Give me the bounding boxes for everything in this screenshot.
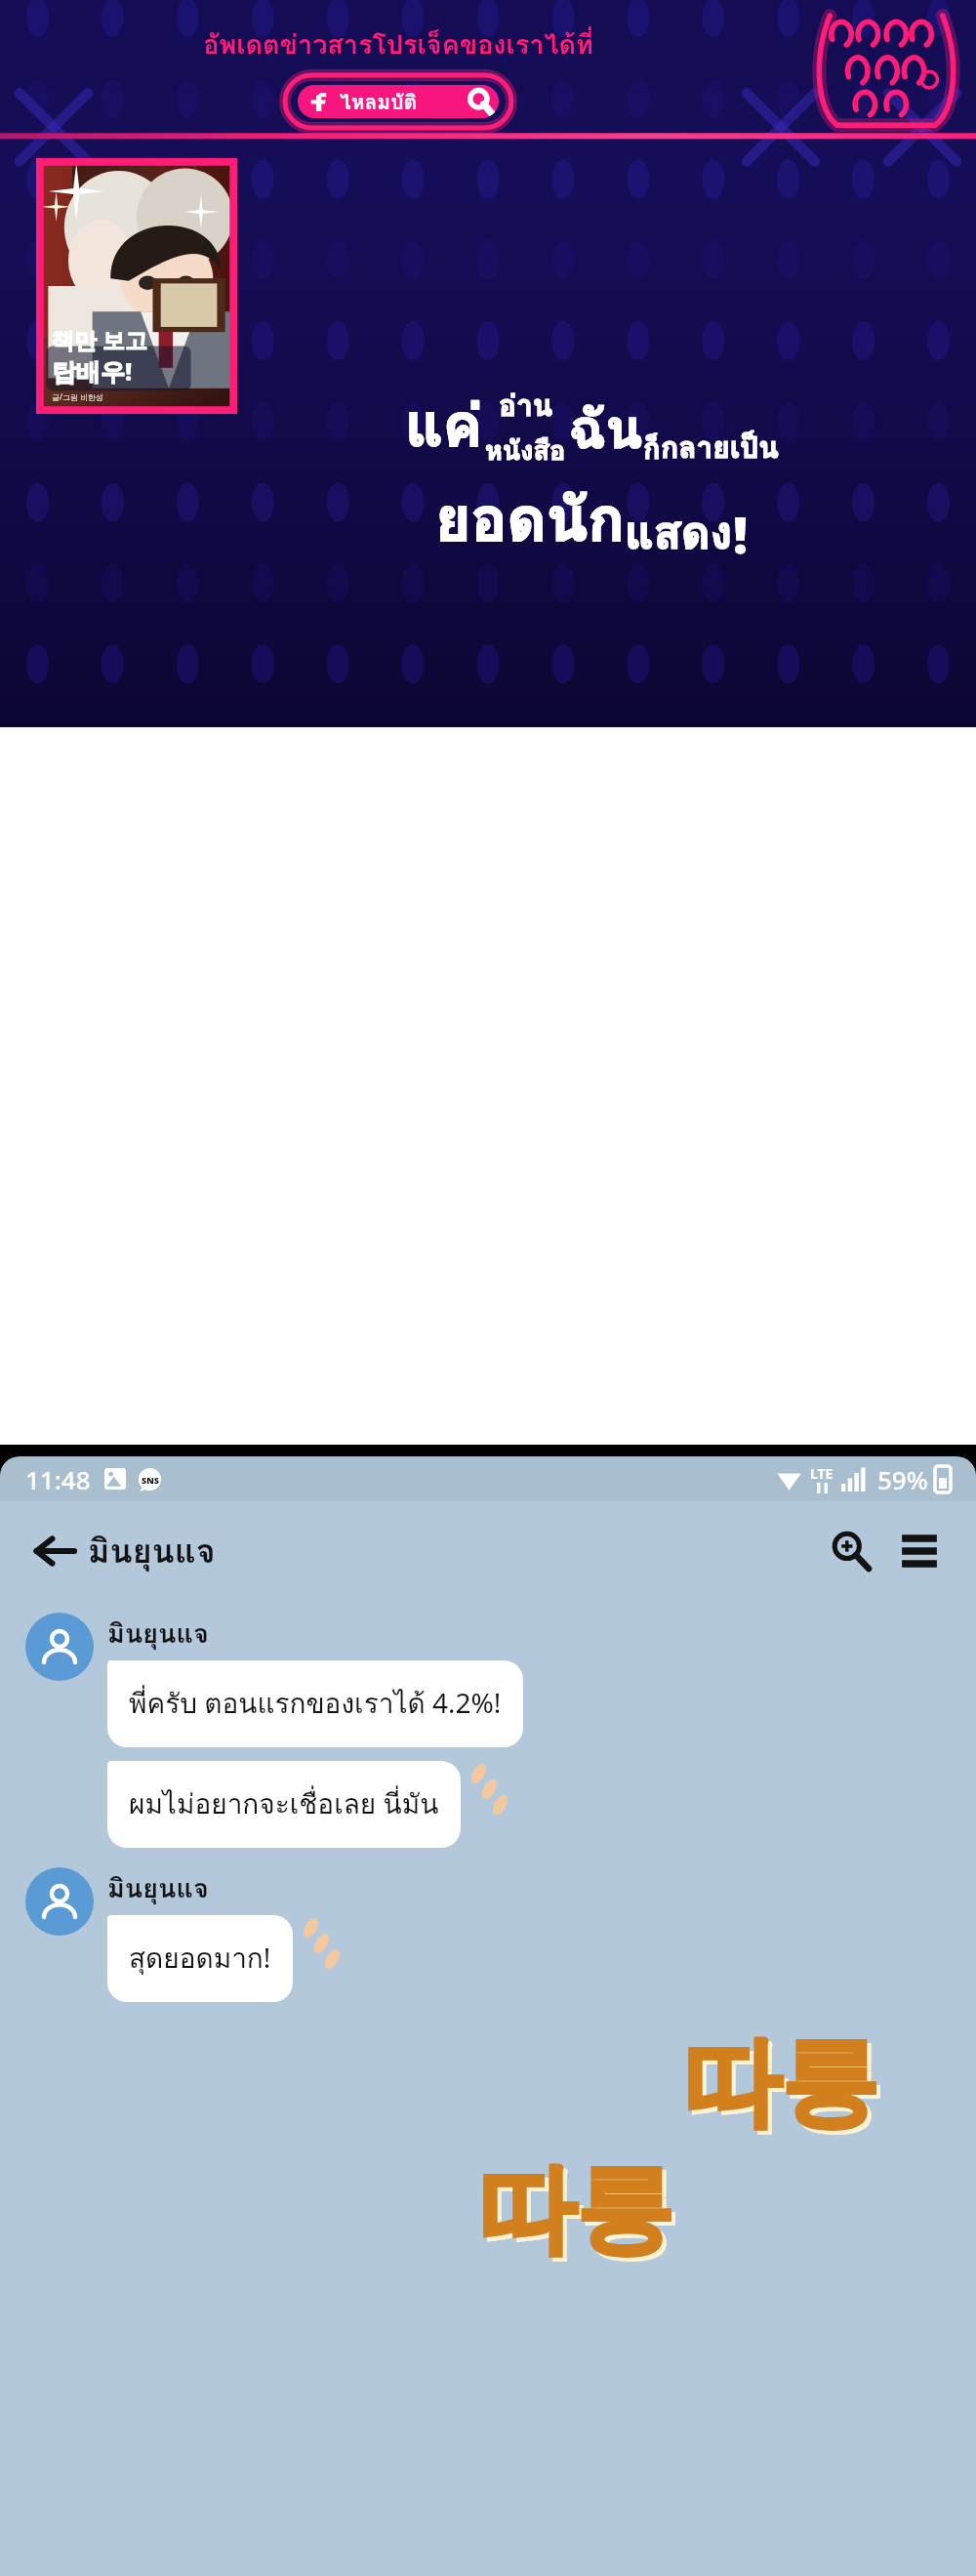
staticText: สุดยอดมาก! — [129, 1937, 271, 1981]
button[interactable]: สุดยอดมาก! — [107, 1915, 293, 2002]
staticText: มินยุนแจ — [107, 1867, 209, 1909]
staticText: ยอดนัก — [435, 471, 625, 568]
staticText: อัพเดตข่าวสารโปรเจ็คของเราได้ที่ — [203, 23, 593, 65]
staticText: ฉัน — [569, 387, 643, 471]
staticText: 탑배우! — [52, 354, 133, 388]
button[interactable]: Profile picture — [25, 1867, 94, 1936]
staticText: มินยุนแจ — [88, 1525, 216, 1577]
staticText: ก็ — [643, 427, 661, 471]
button[interactable]: 책만 보고 — [36, 158, 237, 414]
staticText: SNS — [142, 1474, 159, 1486]
staticText: 11:48 — [25, 1462, 91, 1496]
staticText: แค่ — [405, 379, 482, 471]
staticText: 따릉 — [478, 2148, 673, 2271]
staticText: 따릉 — [683, 2022, 878, 2145]
staticText: หนังสือ — [485, 429, 566, 471]
staticText: 따릉 — [482, 2152, 677, 2275]
staticText: 글/그림 비한성 — [52, 391, 104, 402]
staticText: ! — [733, 499, 749, 568]
staticText: มินยุนแจ — [107, 1613, 209, 1655]
staticText: กลาย — [661, 425, 730, 471]
staticText: แสดง — [625, 497, 733, 568]
staticText: LTE — [810, 1464, 834, 1483]
button[interactable]: Brand logo — [812, 6, 960, 129]
staticText: ! — [733, 499, 749, 568]
button[interactable]: Menu — [890, 1522, 949, 1580]
staticText: 책만 보고 — [52, 324, 147, 354]
button[interactable]: ไหลมบัติ — [285, 75, 511, 128]
button[interactable]: Search — [822, 1522, 880, 1580]
staticText: 59% — [877, 1462, 928, 1496]
staticText: แสดง — [625, 497, 733, 568]
staticText: หนังสือ — [485, 429, 566, 471]
button[interactable]: Back — [27, 1524, 82, 1578]
button[interactable]: พี่ครับ ตอนแรกของเราได้ 4.2%! — [107, 1660, 523, 1747]
staticText: ยอดนัก — [435, 471, 625, 568]
staticText: ฉัน — [569, 387, 643, 471]
staticText: แค่ — [405, 379, 482, 471]
staticText: กลาย — [661, 425, 730, 471]
staticText: 따릉 — [687, 2025, 882, 2148]
staticText: เป็น — [730, 425, 779, 471]
button[interactable]: Profile picture — [25, 1613, 94, 1681]
button[interactable]: ผมไม่อยากจะเชื่อเลย นี่มัน — [107, 1761, 461, 1848]
staticText: อ่าน — [499, 383, 553, 429]
staticText: อ่าน — [499, 383, 553, 429]
staticText: เป็น — [730, 425, 779, 471]
staticText: ก็ — [643, 427, 661, 471]
staticText: อัพเดตข่าวสารโปรเจ็คของเราได้ที่ — [203, 23, 593, 65]
staticText: ไหลมบัติ — [340, 86, 418, 118]
staticText: พี่ครับ ตอนแรกของเราได้ 4.2%! — [129, 1682, 502, 1726]
staticText: ผมไม่อยากจะเชื่อเลย นี่มัน — [129, 1782, 439, 1826]
